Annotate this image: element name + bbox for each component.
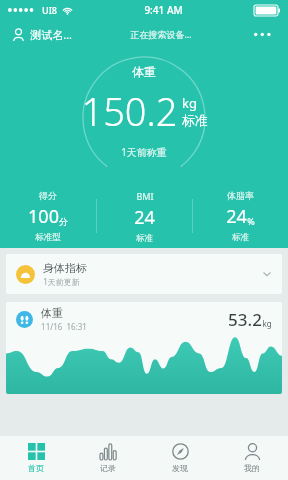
staticText: UI8 <box>42 4 57 16</box>
button[interactable]: 体脂率 <box>193 190 288 242</box>
staticText: 150.2 <box>81 85 178 137</box>
button[interactable]: 首页 <box>0 436 72 480</box>
staticText: 标准 <box>136 233 153 242</box>
staticText: 记录 <box>100 463 116 473</box>
staticText: 11/16 16:31 <box>41 321 87 332</box>
staticText: 得分 <box>39 190 57 201</box>
staticText: 正在搜索设备… <box>130 28 192 40</box>
staticText: 体重 <box>132 64 156 79</box>
staticText: 身体指标 <box>43 261 87 275</box>
button[interactable]: 体重 <box>6 302 282 394</box>
staticText: 体重 <box>41 306 63 320</box>
staticText: 标准 <box>182 112 208 128</box>
staticText: 100 <box>28 204 59 229</box>
staticText: 标准型 <box>35 232 61 242</box>
button[interactable]: 发现 <box>144 436 216 480</box>
staticText: 1天前称重 <box>121 145 167 159</box>
staticText: 24 <box>226 204 247 229</box>
staticText: 体脂率 <box>227 190 254 201</box>
staticText: 9:41 AM <box>144 3 183 17</box>
staticText: kg <box>262 318 272 329</box>
staticText: 标准 <box>232 232 249 242</box>
staticText: 测试名… <box>30 27 72 42</box>
button[interactable]: More options <box>248 26 278 43</box>
staticText: BMI <box>136 190 154 202</box>
staticText: 首页 <box>28 463 44 473</box>
button[interactable]: 身体指标 <box>6 254 282 294</box>
staticText: 1天前更新 <box>43 276 80 287</box>
staticText: % <box>247 215 255 227</box>
staticText: 24 <box>134 205 155 230</box>
button[interactable]: BMI <box>97 190 192 242</box>
button[interactable]: 得分 <box>0 190 96 242</box>
staticText: 我的 <box>244 463 260 473</box>
button[interactable]: 记录 <box>72 436 144 480</box>
staticText: 53.2 <box>228 308 262 331</box>
staticText: 发现 <box>172 463 188 473</box>
button[interactable]: 测试名… <box>10 24 74 45</box>
staticText: 分 <box>59 216 68 227</box>
staticText: kg <box>182 94 197 112</box>
button[interactable]: 我的 <box>216 436 288 480</box>
